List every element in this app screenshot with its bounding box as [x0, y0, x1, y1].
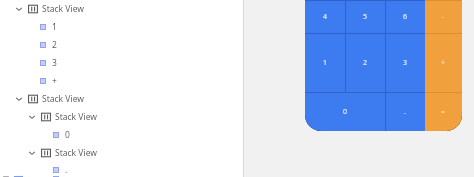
button[interactable]: . — [385, 92, 425, 131]
staticText: 4 — [323, 12, 328, 22]
button[interactable]: 4 — [305, 0, 345, 33]
staticText: 2 — [52, 39, 57, 51]
button[interactable]: Collapse — [0, 144, 243, 162]
button[interactable]: + — [425, 33, 462, 92]
staticText: . — [65, 164, 68, 176]
staticText: + — [52, 75, 57, 87]
staticText: 6 — [403, 12, 408, 22]
staticText: - — [442, 12, 445, 22]
button[interactable]: = — [425, 92, 462, 131]
staticText: Stack View — [55, 147, 97, 159]
button[interactable]: . — [0, 162, 243, 177]
button[interactable]: 3 — [0, 54, 243, 72]
staticText: 1 — [323, 58, 328, 68]
other: Collapse — [27, 112, 37, 122]
staticText: = — [441, 107, 446, 117]
staticText: 0 — [343, 107, 348, 117]
button[interactable]: 1 — [305, 33, 345, 92]
button[interactable]: 2 — [0, 36, 243, 54]
button[interactable]: - — [425, 0, 462, 33]
button[interactable]: 6 — [385, 0, 425, 33]
button[interactable]: 3 — [385, 33, 425, 92]
button[interactable]: + — [0, 72, 243, 90]
staticText: . — [404, 107, 406, 117]
staticText: Stack View — [42, 3, 84, 15]
staticText: 0 — [65, 129, 70, 141]
staticText: 1 — [52, 21, 57, 33]
staticText: Stack View — [42, 93, 84, 105]
staticText: Stack View — [55, 111, 97, 123]
staticText: + — [441, 58, 446, 68]
button[interactable]: 5 — [345, 0, 385, 33]
staticText: 5 — [363, 12, 368, 22]
button[interactable]: Collapse — [0, 0, 243, 18]
other: Collapse — [14, 94, 24, 104]
button[interactable]: 0 — [0, 126, 243, 144]
button[interactable]: Collapse — [0, 90, 243, 108]
button[interactable]: 1 — [0, 18, 243, 36]
button[interactable]: Collapse — [0, 108, 243, 126]
other: Collapse — [14, 4, 24, 14]
staticText: 3 — [403, 58, 408, 68]
other: Collapse — [27, 148, 37, 158]
button[interactable]: 0 — [305, 92, 385, 131]
staticText: 3 — [52, 57, 57, 69]
staticText: 2 — [363, 58, 368, 68]
button[interactable]: 2 — [345, 33, 385, 92]
